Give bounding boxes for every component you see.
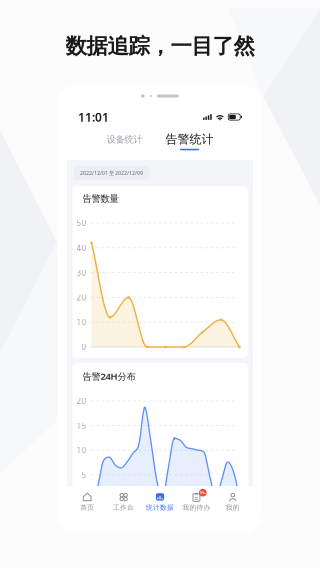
button[interactable]: 告警统计	[159, 127, 219, 150]
staticText: 99+	[200, 490, 206, 495]
staticText: 20	[76, 292, 86, 303]
staticText: 告警统计	[165, 132, 213, 147]
staticText: 20	[76, 396, 86, 406]
staticText: 50	[76, 218, 86, 228]
staticText: 工作台	[113, 503, 134, 512]
staticText: 数据追踪，一目了然	[65, 33, 254, 59]
button[interactable]: 首页	[69, 488, 105, 516]
staticText: 告警数量	[82, 193, 118, 204]
staticText: 10	[76, 317, 86, 327]
staticText: 统计数据	[146, 503, 174, 512]
staticText: 2022/12/01 至 2022/12/09	[80, 169, 143, 177]
staticText: 30	[76, 267, 86, 278]
staticText: 我的待办	[182, 503, 210, 512]
staticText: 40	[76, 242, 86, 253]
button[interactable]: 99+	[178, 488, 215, 516]
staticText: 设备统计	[106, 134, 142, 145]
staticText: 告警24H分布	[82, 370, 135, 382]
staticText: 11:01	[78, 109, 109, 125]
button[interactable]: 设备统计	[100, 129, 148, 149]
staticText: 15	[76, 420, 86, 431]
staticText: 我的	[226, 503, 240, 512]
button[interactable]: 我的	[215, 488, 251, 516]
staticText: 0	[81, 342, 86, 352]
staticText: 10	[76, 445, 86, 455]
staticText: 5	[81, 469, 86, 480]
staticText: 首页	[80, 503, 94, 512]
button[interactable]: 统计数据	[142, 488, 178, 516]
button[interactable]: 工作台	[105, 488, 142, 516]
